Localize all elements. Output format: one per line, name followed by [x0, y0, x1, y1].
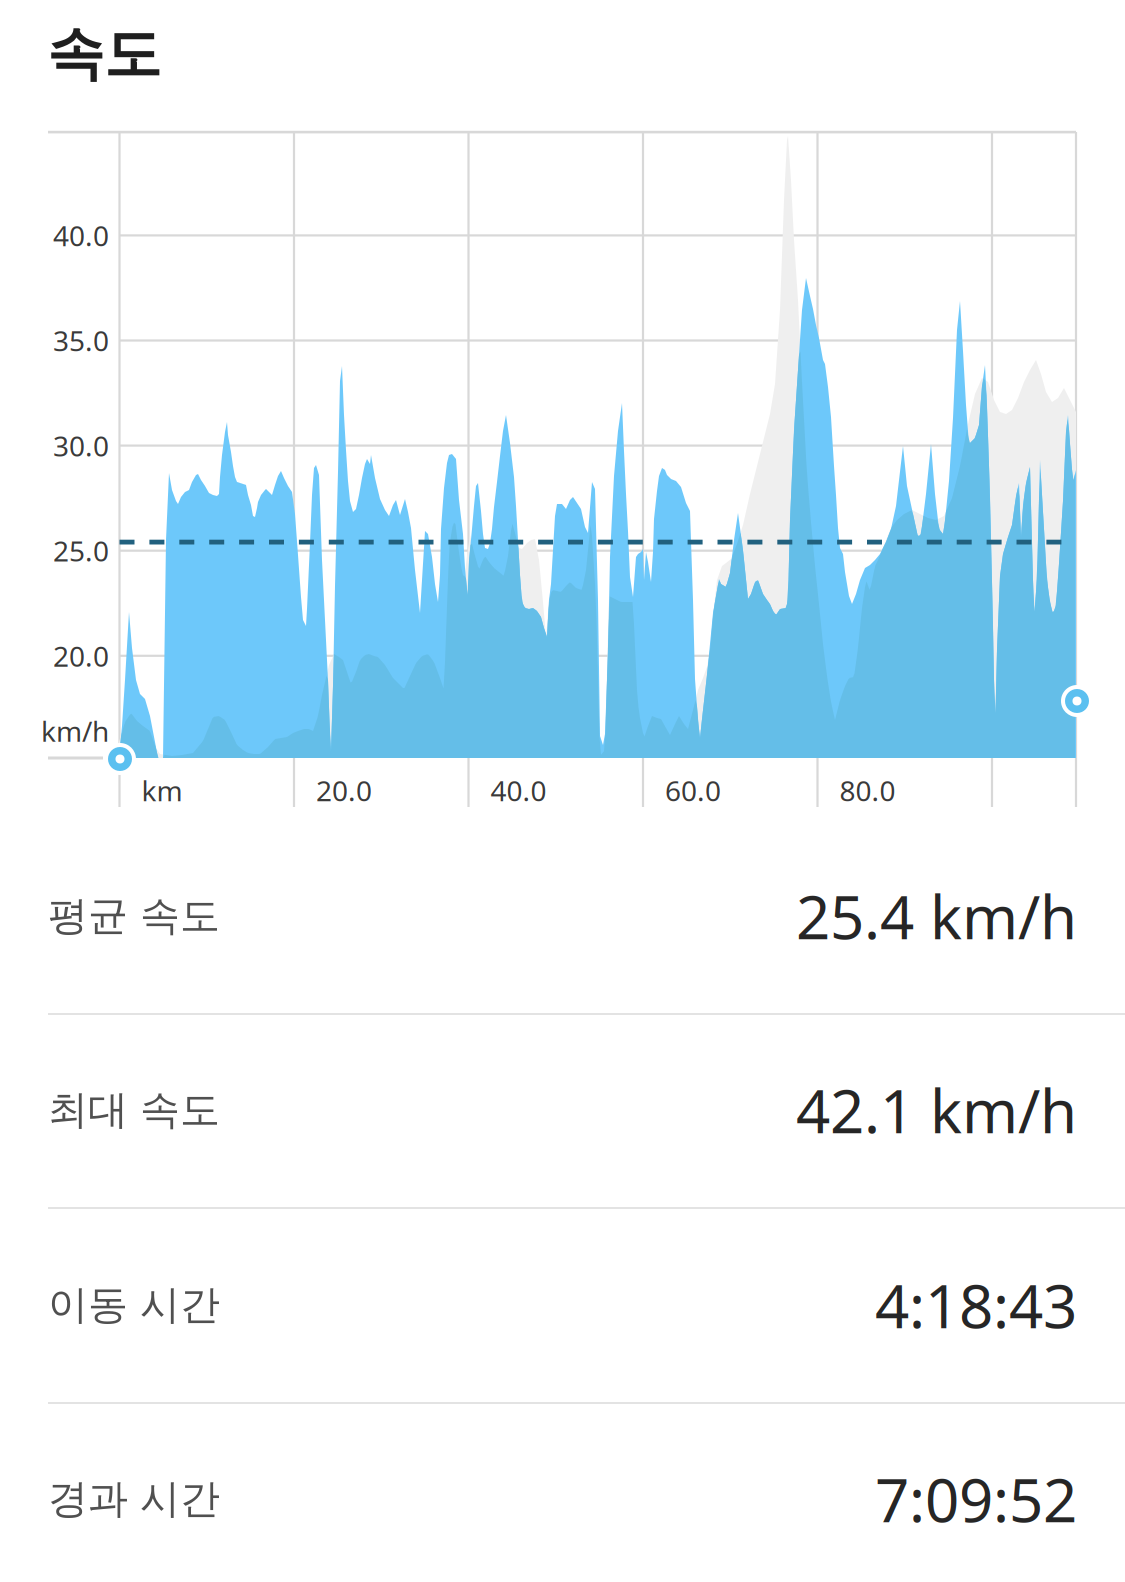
staticText: 4:18:43 [875, 1265, 1077, 1345]
staticText: 40.0 [53, 217, 109, 254]
staticText: 20.0 [53, 637, 109, 674]
staticText: km [141, 772, 182, 809]
staticText: 42.1 km/h [796, 1070, 1077, 1150]
staticText: 속도 [47, 19, 161, 89]
staticText: 평균 속도 [48, 891, 220, 940]
staticText: 이동 시간 [48, 1280, 220, 1329]
button[interactable]: Range start handle [100, 739, 140, 779]
staticText: 60.0 [665, 772, 721, 809]
staticText: 40.0 [490, 772, 546, 809]
button[interactable]: 이동 시간 [0, 1208, 1125, 1402]
staticText: km/h [41, 712, 109, 750]
button[interactable]: 평균 속도 [0, 819, 1125, 1013]
staticText: 80.0 [839, 772, 895, 809]
button[interactable]: 경과 시간 [0, 1402, 1125, 1582]
staticText: 30.0 [53, 427, 109, 464]
staticText: 25.0 [53, 532, 109, 569]
button[interactable]: Range end handle [1057, 681, 1097, 721]
staticText: 최대 속도 [48, 1085, 220, 1134]
staticText: 25.4 km/h [796, 876, 1077, 956]
button[interactable]: 최대 속도 [0, 1013, 1125, 1207]
staticText: 20.0 [316, 772, 372, 809]
staticText: 7:09:52 [875, 1459, 1077, 1539]
staticText: 경과 시간 [48, 1474, 220, 1523]
staticText: 35.0 [53, 322, 109, 359]
